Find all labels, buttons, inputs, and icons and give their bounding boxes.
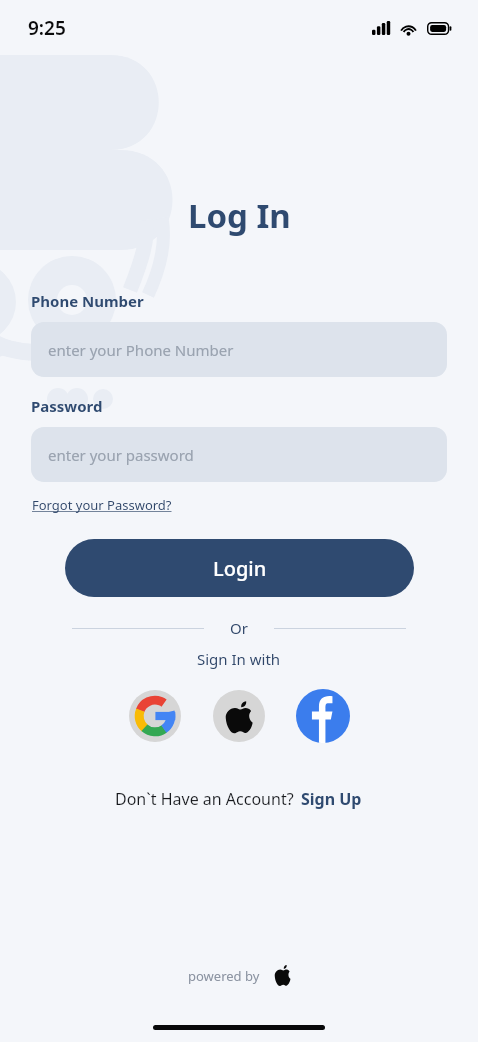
staticText: powered by: [188, 967, 260, 985]
staticText: 9:25: [28, 15, 66, 41]
button[interactable]: Sign in with Facebook: [295, 688, 351, 744]
staticText: enter your password: [48, 445, 194, 465]
staticText: Password: [31, 396, 103, 416]
button[interactable]: Login: [65, 539, 414, 597]
staticText: Login: [213, 555, 267, 582]
staticText: enter your Phone Number: [48, 340, 234, 360]
staticText: Log In: [188, 193, 291, 238]
button[interactable]: Sign in with Google: [127, 688, 183, 744]
button[interactable]: Sign Up: [300, 786, 363, 812]
staticText: Don`t Have an Account?: [115, 788, 294, 810]
button[interactable]: Forgot your Password?: [31, 494, 173, 516]
staticText: Or: [230, 618, 248, 638]
staticText: Sign In with: [197, 649, 281, 669]
staticText: Phone Number: [31, 291, 144, 311]
button[interactable]: enter your password: [31, 427, 447, 482]
staticText: Forgot your Password?: [32, 496, 172, 514]
button[interactable]: enter your Phone Number: [31, 322, 447, 377]
staticText: Sign Up: [301, 788, 362, 810]
button[interactable]: Sign in with Apple: [211, 688, 267, 744]
